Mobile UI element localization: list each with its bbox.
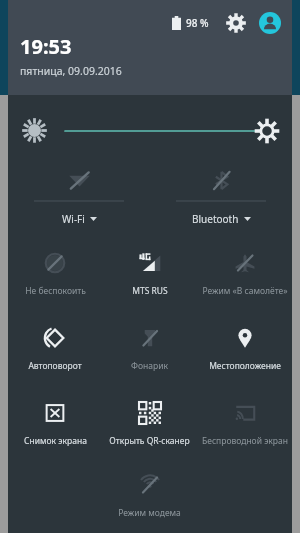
button[interactable]: Brightness [65, 124, 256, 138]
staticText: Bluetooth [192, 212, 239, 226]
staticText: пятница, 09.09.2016 [20, 64, 122, 78]
button[interactable]: Режим модема [102, 461, 197, 531]
staticText: Wi-Fi [62, 212, 85, 226]
staticText: 19:53 [20, 33, 72, 60]
button[interactable]: Открыть QR-сканер [102, 389, 197, 461]
staticText: Не беспокоить [25, 285, 86, 297]
staticText: Автоповорот [28, 360, 82, 372]
button[interactable]: Автоповорот [8, 314, 102, 389]
staticText: Местоположение [209, 360, 281, 372]
button[interactable]: Режим «В самолёте» [197, 239, 292, 314]
button[interactable]: Беспроводной экран [197, 389, 292, 461]
button[interactable]: Не беспокоить [8, 239, 102, 314]
staticText: Открыть QR-сканер [109, 435, 190, 447]
button[interactable]: Снимок экрана [8, 389, 102, 461]
button[interactable]: Settings [222, 9, 250, 37]
staticText: MTS RUS [132, 285, 168, 297]
staticText: Снимок экрана [24, 435, 87, 447]
button[interactable]: Bluetooth [150, 161, 292, 239]
staticText: Фонарик [131, 360, 168, 372]
button[interactable]: Wi-Fi [8, 161, 150, 239]
staticText: 98 % [186, 16, 209, 30]
button[interactable]: MTS RUS [102, 239, 197, 314]
staticText: Режим модема [118, 507, 181, 519]
button[interactable]: Местоположение [197, 314, 292, 389]
button[interactable]: Фонарик [102, 314, 197, 389]
button[interactable]: User profile [256, 9, 284, 37]
staticText: Режим «В самолёте» [202, 285, 288, 297]
staticText: Беспроводной экран [202, 435, 288, 447]
